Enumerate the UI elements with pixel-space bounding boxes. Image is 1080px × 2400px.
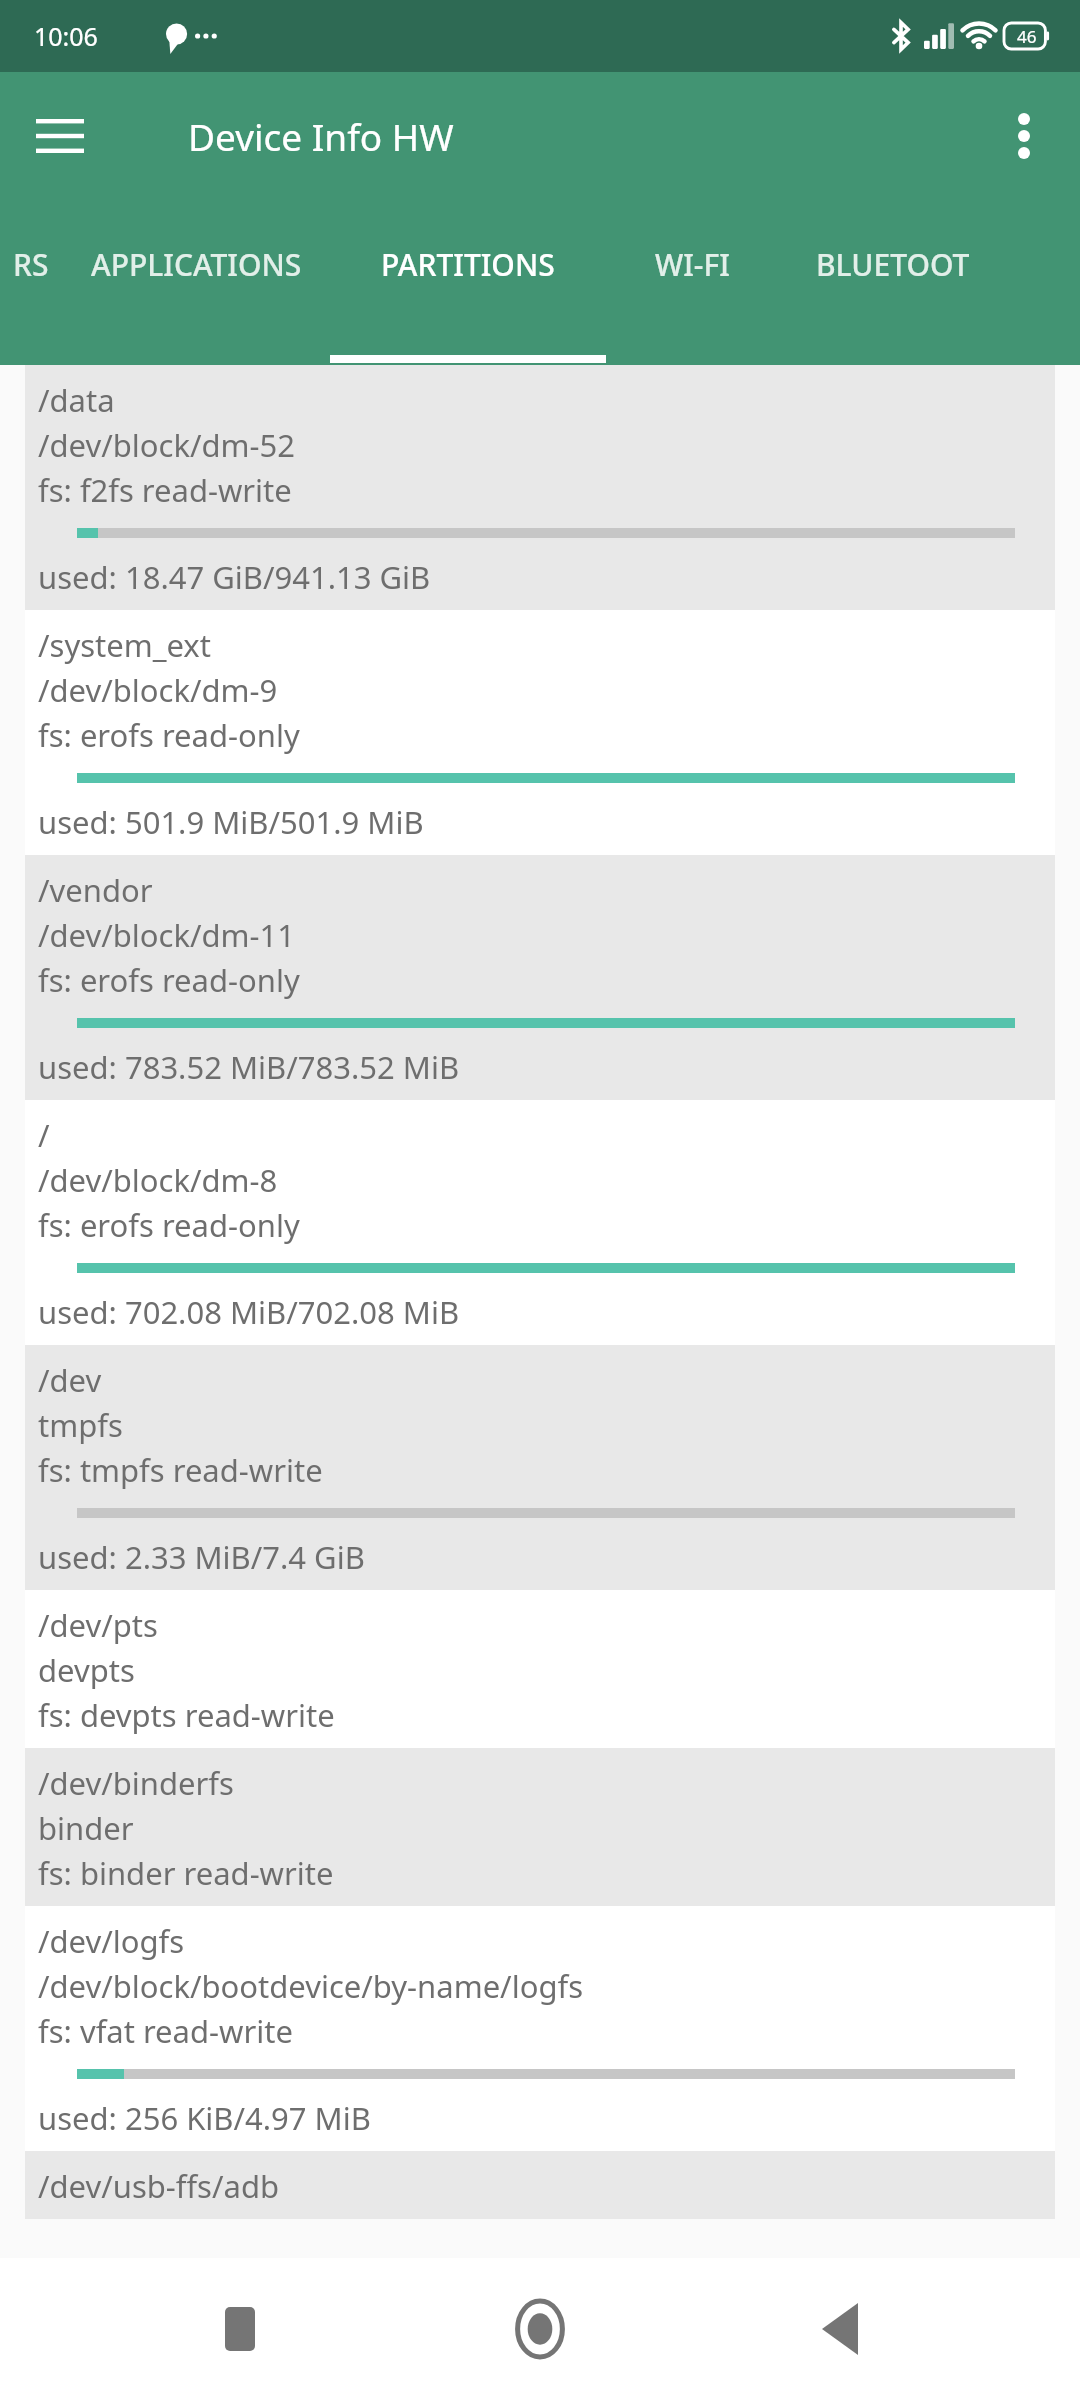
button[interactable]: /data [25,365,1055,610]
staticText: used: 18.47 GiB/941.13 GiB [38,556,431,598]
staticText: fs: devpts read-write [38,1694,335,1736]
button[interactable]: /dev/logfs [25,1906,1055,2151]
button[interactable]: /system_ext [25,610,1055,855]
staticText: /vendor [38,869,153,911]
staticText: /dev/block/bootdevice/by-name/logfs [38,1965,583,2007]
staticText: /dev/pts [38,1604,158,1646]
staticText: 46 [1017,25,1037,48]
staticText: used: 783.52 MiB/783.52 MiB [38,1046,460,1088]
staticText: fs: erofs read-only [38,959,300,1001]
staticText: /dev/block/dm-8 [38,1159,278,1201]
button[interactable]: Open navigation drawer [24,100,96,172]
staticText: fs: vfat read-write [38,2010,293,2052]
button[interactable]: / [25,1100,1055,1345]
button[interactable]: /dev/usb-ffs/adb [25,2151,1055,2219]
staticText: fs: binder read-write [38,1852,334,1894]
button[interactable]: /vendor [25,855,1055,1100]
button[interactable]: /dev/binderfs [25,1748,1055,1906]
staticText: /dev/block/dm-11 [38,914,296,956]
staticText: binder [38,1807,134,1849]
button[interactable]: More options [986,98,1062,174]
staticText: devpts [38,1649,135,1691]
staticText: WI-FI [655,244,730,285]
staticText: used: 2.33 MiB/7.4 GiB [38,1536,365,1578]
button[interactable]: Back [780,2269,900,2389]
staticText: fs: erofs read-only [38,714,300,756]
staticText: RS [13,244,49,285]
button[interactable]: BLUETOOT [778,200,1008,365]
button[interactable]: RS [0,200,62,365]
staticText: fs: erofs read-only [38,1204,300,1246]
button[interactable]: /dev/pts [25,1590,1055,1748]
staticText: tmpfs [38,1404,123,1446]
staticText: /dev/logfs [38,1920,185,1962]
staticText: 10:06 [34,19,98,53]
staticText: /data [38,379,115,421]
staticText: /dev/usb-ffs/adb [38,2165,280,2207]
button[interactable]: Recent apps [180,2269,300,2389]
staticText: used: 702.08 MiB/702.08 MiB [38,1291,460,1333]
staticText: fs: tmpfs read-write [38,1449,323,1491]
button[interactable]: WI-FI [606,200,778,365]
staticText: /system_ext [38,624,211,666]
button[interactable]: APPLICATIONS [62,200,330,365]
staticText: / [38,1114,50,1156]
staticText: used: 501.9 MiB/501.9 MiB [38,801,424,843]
staticText: Device Info HW [188,111,454,161]
staticText: BLUETOOT [816,244,970,285]
button[interactable]: /dev [25,1345,1055,1590]
staticText: fs: f2fs read-write [38,469,292,511]
staticText: used: 256 KiB/4.97 MiB [38,2097,371,2139]
staticText: PARTITIONS [381,244,555,285]
button[interactable]: PARTITIONS [330,200,606,365]
staticText: /dev/block/dm-52 [38,424,296,466]
staticText: APPLICATIONS [91,244,302,285]
staticText: /dev/binderfs [38,1762,234,1804]
staticText: /dev/block/dm-9 [38,669,278,711]
staticText: /dev [38,1359,102,1401]
button[interactable]: Home [480,2269,600,2389]
